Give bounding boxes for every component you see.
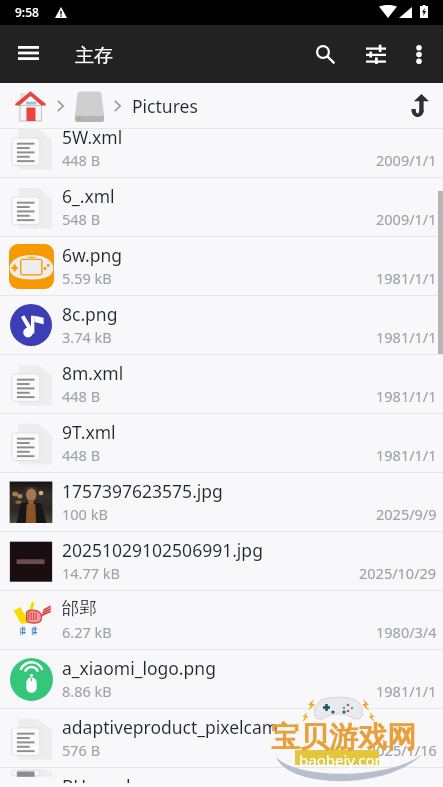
- staticText: 448 B: [62, 386, 101, 406]
- staticText: 1981/1/1: [376, 327, 437, 347]
- staticText: 8.86 kB: [62, 681, 112, 701]
- staticText: 20251029102506991.jpg: [62, 538, 263, 562]
- staticText: adaptiveproduct_pixelcam: [62, 715, 279, 739]
- button[interactable]: a_xiaomi_logo.png: [0, 650, 443, 708]
- staticText: 8c.png: [62, 302, 118, 326]
- staticText: 1981/1/1: [376, 386, 437, 406]
- button[interactable]: Go up: [401, 87, 439, 125]
- staticText: 448 B: [62, 445, 101, 465]
- button[interactable]: Pictures: [132, 94, 198, 118]
- staticText: 1981/1/1: [376, 268, 437, 288]
- staticText: 9T.xml: [62, 420, 116, 444]
- staticText: 2025/9/9: [376, 504, 437, 524]
- button[interactable]: 8c.png: [0, 296, 443, 354]
- button[interactable]: 6_.xml: [0, 178, 443, 236]
- staticText: 448 B: [62, 150, 101, 170]
- button[interactable]: Internal storage: [74, 89, 105, 122]
- staticText: 6w.png: [62, 243, 123, 267]
- button[interactable]: 9T.xml: [0, 414, 443, 472]
- button[interactable]: BHx.xml: [0, 768, 443, 777]
- staticText: 邰郢: [62, 597, 97, 619]
- button[interactable]: 8m.xml: [0, 355, 443, 413]
- button[interactable]: Search: [298, 28, 350, 80]
- staticText: 宝贝游戏网: [271, 719, 416, 756]
- staticText: 100 kB: [62, 504, 108, 524]
- staticText: 3.74 kB: [62, 327, 112, 347]
- staticText: 1757397623575.jpg: [62, 479, 223, 503]
- staticText: 576 B: [62, 740, 101, 760]
- staticText: 5W.xml: [62, 125, 123, 149]
- staticText: a_xiaomi_logo.png: [62, 656, 216, 680]
- staticText: 主存: [75, 44, 113, 68]
- staticText: 8m.xml: [62, 361, 124, 385]
- button[interactable]: 20251029102506991.jpg: [0, 532, 443, 590]
- button[interactable]: Open navigation drawer: [0, 26, 56, 82]
- staticText: baobeiy.com: [299, 750, 389, 770]
- button[interactable]: adaptiveproduct_pixelcam: [0, 709, 443, 767]
- staticText: 1981/1/1: [376, 445, 437, 465]
- button[interactable]: More options: [397, 32, 441, 76]
- button[interactable]: 5W.xml: [0, 119, 443, 177]
- button[interactable]: Home: [15, 89, 46, 122]
- staticText: BHx.xml: [62, 774, 131, 783]
- staticText: 14.77 kB: [62, 563, 120, 583]
- staticText: 2025/10/29: [359, 563, 437, 583]
- staticText: 2025/1/16: [368, 740, 437, 760]
- staticText: 9:58: [15, 4, 39, 20]
- staticText: 1980/3/4: [376, 622, 437, 642]
- button[interactable]: 6w.png: [0, 237, 443, 295]
- staticText: 548 B: [62, 209, 101, 229]
- staticText: 1981/1/1: [376, 681, 437, 701]
- button[interactable]: Sort options: [351, 30, 399, 78]
- staticText: 5.59 kB: [62, 268, 112, 288]
- button[interactable]: 1757397623575.jpg: [0, 473, 443, 531]
- staticText: 6_.xml: [62, 184, 115, 208]
- button[interactable]: 邰郢: [0, 591, 443, 649]
- staticText: 6.27 kB: [62, 622, 112, 642]
- staticText: 2009/1/1: [376, 209, 437, 229]
- staticText: 2009/1/1: [376, 150, 437, 170]
